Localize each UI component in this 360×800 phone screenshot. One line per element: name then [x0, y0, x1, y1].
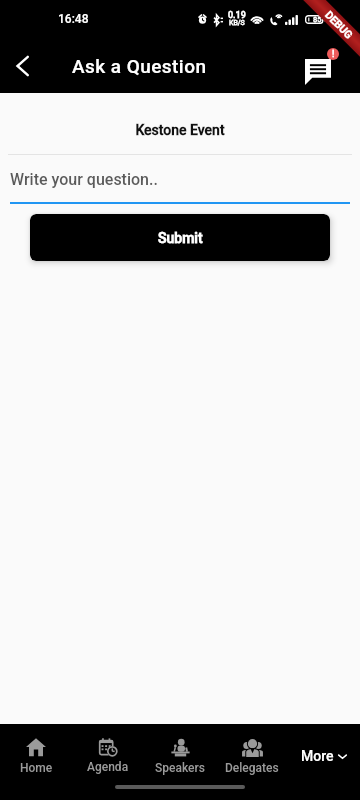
- button[interactable]: Speakers: [144, 724, 216, 788]
- button[interactable]: Write your question..: [10, 170, 350, 204]
- staticText: !: [332, 49, 335, 60]
- staticText: Write your question..: [10, 170, 158, 189]
- staticText: KB/S: [229, 19, 245, 27]
- button[interactable]: Home: [0, 724, 72, 788]
- staticText: Ask a Question: [72, 55, 207, 77]
- staticText: Kestone Event: [0, 122, 360, 138]
- staticText: Agenda: [87, 760, 129, 774]
- button[interactable]: Messages: [299, 47, 339, 87]
- staticText: Home: [20, 761, 53, 775]
- staticText: Delegates: [225, 761, 279, 775]
- button[interactable]: Submit: [30, 214, 330, 261]
- staticText: DEBUG: [323, 8, 355, 41]
- button[interactable]: More: [288, 724, 360, 788]
- button[interactable]: Delegates: [216, 724, 288, 788]
- staticText: Submit: [158, 230, 203, 246]
- staticText: 16:48: [58, 12, 89, 26]
- staticText: Speakers: [155, 761, 205, 775]
- staticText: More: [301, 748, 334, 764]
- button[interactable]: Back: [0, 43, 48, 91]
- staticText: 0.19: [228, 10, 246, 21]
- button[interactable]: Agenda: [72, 724, 144, 788]
- staticText: 85: [313, 15, 322, 24]
